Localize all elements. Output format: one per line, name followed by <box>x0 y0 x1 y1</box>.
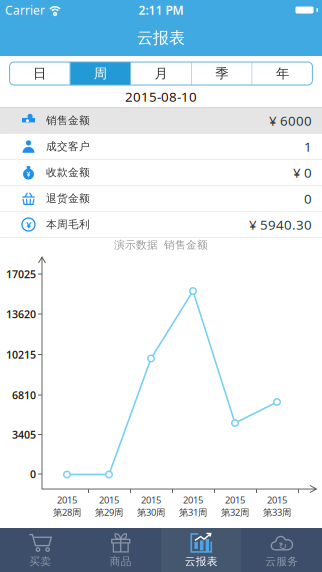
button[interactable]: 云报表 <box>161 528 241 572</box>
button[interactable]: 成交客户 <box>0 134 322 160</box>
staticText: 销售金额 <box>46 114 90 127</box>
staticText: 6810 <box>12 388 36 402</box>
button[interactable]: 商品 <box>80 528 161 572</box>
button[interactable]: ¥ <box>0 160 322 186</box>
staticText: 2015 <box>57 494 77 506</box>
staticText: 日 <box>33 65 46 82</box>
staticText: 第28周 <box>53 506 81 518</box>
staticText: 2015 <box>183 494 203 506</box>
staticText: 买卖 <box>29 555 51 568</box>
staticText: 成交客户 <box>46 140 90 153</box>
button[interactable]: 年 <box>252 62 312 85</box>
staticText: 10215 <box>6 347 36 362</box>
staticText: Carrier <box>5 2 45 18</box>
button[interactable]: 日 <box>10 62 70 85</box>
staticText: 收款金额 <box>46 166 90 179</box>
staticText: 3405 <box>12 427 36 442</box>
staticText: 2015-08-10 <box>125 88 197 105</box>
button[interactable]: ↻ <box>241 528 322 572</box>
staticText: 云服务 <box>265 555 298 568</box>
staticText: 云报表 <box>137 28 185 48</box>
staticText: ¥ <box>26 218 31 231</box>
button[interactable]: 季 <box>192 62 252 85</box>
staticText: 第29周 <box>95 506 123 518</box>
button[interactable]: 买卖 <box>0 528 80 572</box>
button[interactable]: 周 <box>70 62 130 85</box>
button[interactable]: 退货金额 <box>0 186 322 212</box>
staticText: 1 <box>304 138 312 155</box>
staticText: ¥ 6000 <box>269 112 312 129</box>
button[interactable]: 销售金额 <box>0 108 322 134</box>
staticText: 本周毛利 <box>46 218 90 231</box>
staticText: 退货金额 <box>46 192 90 205</box>
staticText: 季 <box>215 65 228 82</box>
staticText: 周 <box>94 65 107 82</box>
staticText: ¥ 5940.30 <box>249 216 312 233</box>
staticText: 2:11 PM <box>138 2 183 18</box>
staticText: 2015 <box>141 494 161 506</box>
staticText: 第31周 <box>179 506 207 518</box>
staticText: 0 <box>304 190 312 207</box>
button[interactable]: ¥ <box>0 212 322 238</box>
staticText: 17025 <box>6 267 36 281</box>
staticText: 演示数据 销售金额 <box>114 238 208 251</box>
staticText: 2015 <box>99 494 119 506</box>
staticText: 2015 <box>225 494 245 506</box>
staticText: 第30周 <box>137 506 165 518</box>
staticText: 云报表 <box>185 555 218 568</box>
button[interactable]: 月 <box>131 62 191 85</box>
staticText: 商品 <box>110 555 132 568</box>
staticText: 13620 <box>6 307 36 321</box>
staticText: ¥ 0 <box>293 164 312 181</box>
staticText: 2015 <box>267 494 287 506</box>
staticText: ↻ <box>278 540 287 552</box>
staticText: ¥ <box>26 170 30 178</box>
staticText: 第33周 <box>263 506 291 518</box>
staticText: 0 <box>30 467 36 481</box>
staticText: 第32周 <box>221 506 249 518</box>
staticText: 月 <box>154 65 167 82</box>
staticText: 年 <box>276 65 289 82</box>
